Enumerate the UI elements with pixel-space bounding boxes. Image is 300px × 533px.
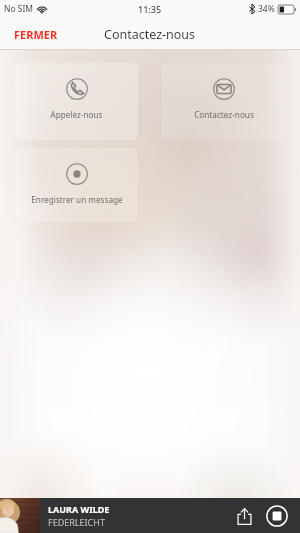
staticText: 34%	[258, 3, 275, 15]
button[interactable]: Enregistrer un message	[15, 148, 138, 222]
button[interactable]: Stop	[262, 501, 292, 531]
button[interactable]: FERMER	[0, 21, 72, 48]
staticText: 11:35	[138, 3, 162, 15]
staticText: No SIM	[4, 3, 34, 15]
button[interactable]: Share	[230, 502, 258, 530]
staticText: FEDERLEICHT	[48, 516, 105, 528]
staticText: FERMER	[14, 27, 58, 42]
staticText: Appelez-nous	[50, 109, 103, 120]
staticText: Contactez-nous	[104, 26, 196, 43]
staticText: Contactez-nous	[194, 109, 254, 120]
staticText: LAURA WILDE	[48, 503, 110, 515]
button[interactable]: Contactez-nous	[162, 63, 285, 140]
button[interactable]: Appelez-nous	[15, 63, 138, 140]
staticText: Enregistrer un message	[31, 194, 123, 205]
